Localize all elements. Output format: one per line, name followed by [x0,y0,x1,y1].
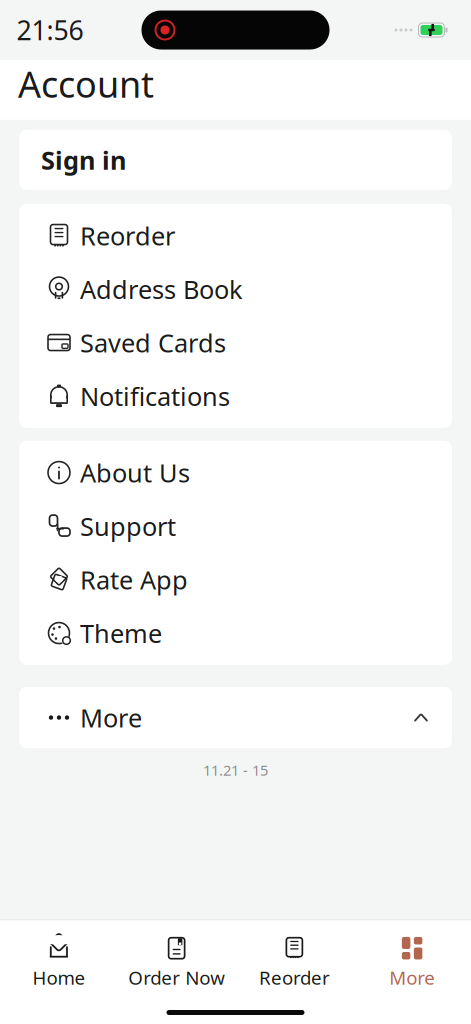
button[interactable]: Rate App [19,553,452,606]
button[interactable]: Sign in [19,130,452,190]
button[interactable]: Saved Cards [19,316,452,369]
staticText: 21:56 [16,12,83,48]
staticText: Reorder [80,219,175,252]
staticText: Theme [80,616,162,650]
staticText: Account [18,60,154,108]
staticText: 11.21 - 15 [203,760,268,780]
staticText: Address Book [80,272,243,306]
button[interactable]: More [353,928,471,998]
staticText: More [80,701,142,734]
staticText: Saved Cards [80,326,226,359]
staticText: Sign in [41,143,126,177]
button[interactable]: More [19,691,452,744]
button[interactable]: Notifications [19,369,452,423]
staticText: Rate App [80,563,188,596]
button[interactable]: Reorder [19,209,452,262]
button[interactable]: Address Book [19,262,452,316]
staticText: Order Now [128,965,225,990]
button[interactable]: Reorder [235,928,353,998]
button[interactable]: Home [0,928,118,998]
button[interactable]: Order Now [118,928,236,998]
staticText: Support [80,509,176,543]
button[interactable]: About Us [19,446,452,499]
button[interactable]: Theme [19,606,452,660]
staticText: Reorder [259,965,330,990]
staticText: More [389,965,435,990]
button[interactable]: Support [19,499,452,553]
staticText: Notifications [80,379,230,413]
staticText: About Us [80,456,190,489]
staticText: Home [32,965,85,990]
